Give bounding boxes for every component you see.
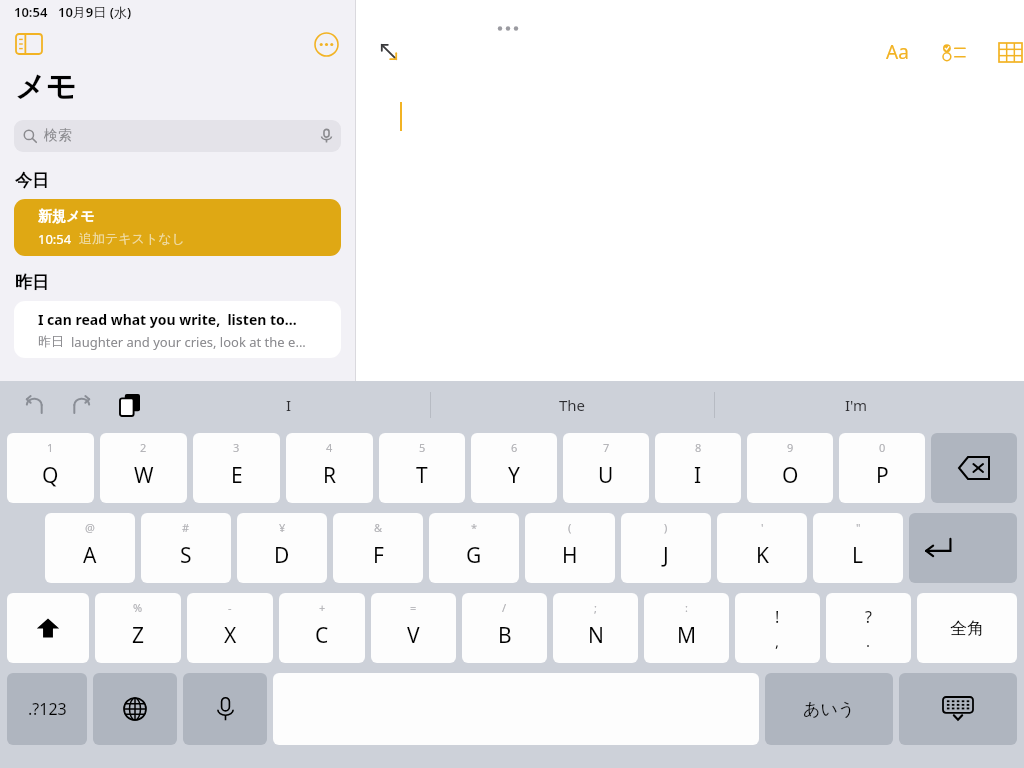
button[interactable]: Backspace	[931, 433, 1017, 503]
staticText: 3	[233, 440, 240, 455]
staticText: G	[466, 541, 482, 570]
button[interactable]: 8	[655, 433, 741, 503]
staticText: *	[471, 520, 478, 535]
button[interactable]: *	[429, 513, 519, 583]
button[interactable]: ;	[553, 593, 638, 663]
staticText: V	[407, 621, 420, 650]
button[interactable]: Undo	[16, 387, 52, 423]
button[interactable]: 2	[100, 433, 187, 503]
button[interactable]: Expand note	[374, 37, 404, 67]
staticText: )	[664, 520, 668, 535]
button[interactable]: 9	[747, 433, 833, 503]
staticText: 今日	[15, 170, 49, 191]
staticText: 4	[326, 440, 333, 455]
button[interactable]: %	[95, 593, 181, 663]
button[interactable]: 検索	[14, 120, 341, 152]
staticText: R	[323, 461, 337, 490]
button[interactable]: /	[462, 593, 547, 663]
button[interactable]: I'm	[715, 381, 998, 428]
staticText: L	[852, 541, 864, 570]
button[interactable]: 1	[7, 433, 94, 503]
button[interactable]: "	[813, 513, 903, 583]
button[interactable]: (	[525, 513, 615, 583]
button[interactable]: 4	[286, 433, 373, 503]
button[interactable]: #	[141, 513, 231, 583]
staticText: 10:54	[38, 230, 72, 248]
staticText: &	[374, 520, 383, 535]
button[interactable]: :	[644, 593, 729, 663]
staticText: M	[677, 621, 697, 650]
button[interactable]: The	[431, 381, 714, 428]
staticText: H	[562, 541, 578, 570]
staticText: B	[498, 621, 512, 650]
button[interactable]: ?	[826, 593, 911, 663]
staticText: +	[319, 600, 326, 615]
button[interactable]: &	[333, 513, 423, 583]
staticText: -	[228, 600, 232, 615]
button[interactable]: '	[717, 513, 807, 583]
button[interactable]: Return	[909, 513, 1017, 583]
staticText: あいう	[803, 699, 856, 720]
staticText: 10月9日 (水)	[58, 3, 132, 21]
button[interactable]: 0	[839, 433, 925, 503]
button[interactable]: Change keyboard	[93, 673, 177, 745]
staticText: J	[663, 541, 669, 570]
button[interactable]: 6	[471, 433, 557, 503]
button[interactable]: Insert table	[995, 37, 1024, 67]
staticText: I	[286, 395, 292, 415]
button[interactable]: 5	[379, 433, 465, 503]
button[interactable]: )	[621, 513, 711, 583]
button[interactable]: Checklist	[938, 37, 968, 67]
staticText: I'm	[845, 395, 868, 415]
button[interactable]: 3	[193, 433, 280, 503]
staticText: #	[182, 520, 190, 535]
staticText: Z	[132, 621, 145, 650]
button[interactable]: 新規メモ	[14, 199, 341, 256]
button[interactable]: 全角	[917, 593, 1017, 663]
button[interactable]: +	[279, 593, 365, 663]
staticText: O	[782, 461, 799, 490]
staticText: A	[83, 541, 97, 570]
button[interactable]: -	[187, 593, 273, 663]
staticText: %	[133, 600, 143, 615]
staticText: .	[866, 631, 871, 651]
button[interactable]: ¥	[237, 513, 327, 583]
button[interactable]: .?123	[7, 673, 87, 745]
staticText: =	[410, 600, 417, 615]
button[interactable]: Hide keyboard	[899, 673, 1017, 745]
staticText: 8	[695, 440, 702, 455]
button[interactable]: Toggle sidebar	[12, 27, 46, 61]
staticText: 5	[419, 440, 426, 455]
staticText: Q	[42, 461, 59, 490]
button[interactable]: I can read what you write, listen to...	[14, 301, 341, 358]
button[interactable]: !	[735, 593, 820, 663]
button[interactable]: 7	[563, 433, 649, 503]
button[interactable]: Paste	[112, 387, 148, 423]
button[interactable]: Dictate	[183, 673, 267, 745]
staticText: E	[231, 461, 243, 490]
button[interactable]: Redo	[64, 387, 100, 423]
staticText: The	[559, 395, 586, 415]
staticText: U	[598, 461, 614, 490]
staticText: 検索	[44, 127, 72, 145]
button[interactable]: Format text	[882, 37, 912, 67]
button[interactable]: I	[148, 381, 430, 428]
button[interactable]: @	[45, 513, 135, 583]
button[interactable]: More options	[309, 27, 343, 61]
staticText: 昨日	[15, 272, 49, 293]
button[interactable]: =	[371, 593, 456, 663]
staticText: 追加テキストなし	[79, 230, 185, 246]
staticText: :	[685, 600, 688, 615]
staticText: 全角	[950, 618, 984, 639]
staticText: 昨日	[38, 333, 64, 349]
staticText: F	[373, 541, 384, 570]
staticText: laughter and your cries, look at the e..…	[71, 333, 306, 351]
button[interactable]: Shift	[7, 593, 89, 663]
button[interactable]: あいう	[765, 673, 893, 745]
staticText: (	[568, 520, 572, 535]
staticText: "	[856, 520, 861, 535]
staticText: T	[416, 461, 428, 490]
staticText: 2	[140, 440, 147, 455]
staticText: Y	[508, 461, 520, 490]
